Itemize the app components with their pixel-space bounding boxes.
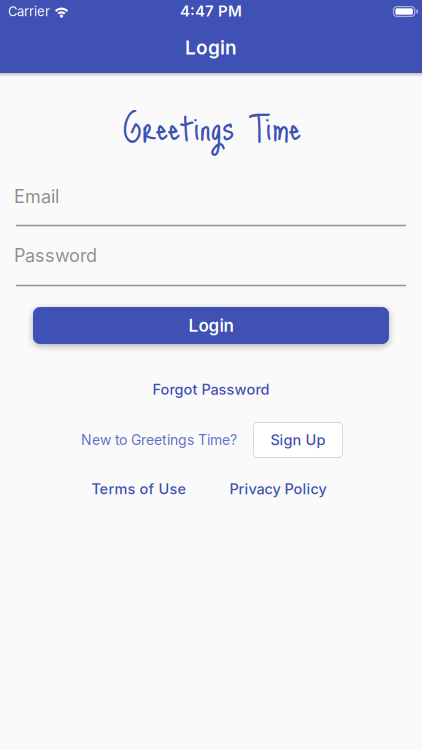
staticText: Privacy Policy — [229, 480, 326, 498]
staticText: Email — [14, 186, 59, 207]
staticText: 4:47 PM — [180, 2, 242, 20]
staticText: Password — [14, 245, 97, 266]
button[interactable]: Email — [14, 180, 408, 226]
button[interactable]: Sign Up — [253, 422, 343, 458]
button[interactable]: Password — [14, 240, 408, 286]
staticText: Greetings Time — [123, 98, 301, 157]
staticText: New to Greetings Time? — [81, 431, 237, 448]
button[interactable]: Terms of Use — [91, 480, 186, 498]
button[interactable]: Privacy Policy — [229, 480, 326, 498]
staticText: Sign Up — [270, 431, 325, 449]
staticText: Forgot Password — [152, 381, 269, 398]
button[interactable]: Login — [33, 307, 389, 344]
staticText: Terms of Use — [91, 480, 186, 498]
button[interactable]: Forgot Password — [144, 373, 277, 406]
staticText: Carrier — [8, 4, 50, 19]
staticText: Login — [185, 36, 237, 59]
staticText: Login — [188, 315, 233, 336]
